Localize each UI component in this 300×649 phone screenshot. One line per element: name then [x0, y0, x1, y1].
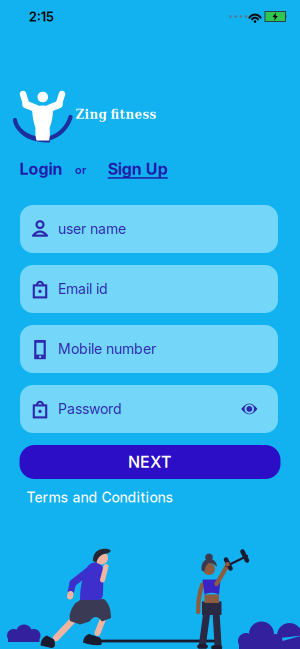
button[interactable]: NEXT	[19, 445, 280, 479]
button[interactable]: Mobile number	[20, 325, 278, 373]
staticText: or	[75, 163, 86, 176]
staticText: Terms and Conditions	[26, 489, 173, 506]
staticText: 2:15	[29, 9, 54, 24]
staticText: Password	[58, 401, 122, 417]
staticText: Login	[19, 160, 62, 178]
staticText: NEXT	[128, 453, 172, 471]
staticText: Sign Up	[108, 160, 168, 178]
staticText: Zing fitness	[75, 107, 156, 122]
staticText: user name	[58, 221, 126, 237]
button[interactable]: Show password	[241, 403, 278, 415]
button[interactable]: Sign Up	[108, 160, 168, 178]
staticText: Mobile number	[58, 341, 156, 357]
button[interactable]: Email id	[20, 265, 278, 313]
button[interactable]: Password	[20, 385, 278, 433]
staticText: Email id	[58, 281, 108, 297]
button[interactable]: Login	[19, 160, 62, 178]
button[interactable]: user name	[20, 205, 278, 253]
button[interactable]: Terms and Conditions	[26, 489, 173, 506]
